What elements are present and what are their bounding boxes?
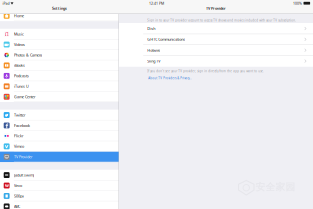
staticText: Podcasts [14, 73, 29, 78]
staticText: About TV Providers & Privacy... [148, 76, 192, 80]
staticText: iTunes U [14, 84, 29, 89]
staticText: TV Provider [206, 6, 226, 11]
staticText: Videos [14, 42, 25, 47]
staticText: Photos & Camera [14, 52, 42, 57]
staticText: iPad [2, 1, 9, 6]
button[interactable]: GHTC Communications [119, 34, 313, 45]
button[interactable]: Home [0, 11, 119, 21]
button[interactable]: About TV Providers & Privacy... [148, 76, 304, 80]
button[interactable]: 500px [0, 191, 119, 201]
button[interactable]: Hotwire [119, 45, 313, 56]
button[interactable]: Photos & Camera [0, 50, 119, 60]
button[interactable]: iTunes U [0, 81, 119, 91]
button[interactable]: Twitter [0, 110, 119, 120]
button[interactable]: Game Center [0, 92, 119, 102]
staticText: Music [14, 31, 24, 37]
button[interactable]: iBooks [0, 60, 119, 71]
staticText: Settings [52, 6, 67, 11]
button[interactable]: ABC [0, 201, 119, 209]
button[interactable]: Podcasts [0, 71, 119, 81]
button[interactable]: TV Provider [0, 152, 119, 162]
staticText: Dish [147, 26, 155, 31]
staticText: 500px [14, 193, 24, 198]
staticText: Facebook [14, 123, 30, 128]
button[interactable]: Flickr [0, 131, 119, 141]
staticText: iBooks [14, 63, 25, 68]
staticText: [adult swim] [14, 172, 34, 178]
staticText: Vevo [14, 183, 22, 188]
staticText: 12:41 PM [149, 1, 164, 6]
button[interactable]: Videos [0, 39, 119, 50]
button[interactable]: Sling TV [119, 56, 313, 66]
button[interactable]: Vevo [0, 180, 119, 191]
staticText: TV Provider [14, 154, 33, 159]
staticText: 100% [293, 1, 302, 6]
staticText: Game Center [14, 94, 36, 99]
staticText: If you don't see your TV provider, sign … [147, 69, 264, 73]
button[interactable]: Dish [119, 23, 313, 34]
staticText: GHTC Communications [147, 37, 185, 42]
staticText: Sign in to your TV provider account to a… [147, 18, 296, 22]
staticText: Twitter [14, 112, 26, 118]
button[interactable]: Music [0, 29, 119, 39]
staticText: Flickr [14, 133, 24, 138]
staticText: Vimeo [14, 144, 24, 149]
button[interactable]: Vimeo [0, 141, 119, 152]
staticText: Sling TV [147, 58, 160, 64]
staticText: ABC [14, 204, 20, 209]
staticText: Home [14, 13, 24, 18]
button[interactable]: Facebook [0, 120, 119, 131]
staticText: Hotwire [147, 48, 160, 53]
button[interactable]: [adult swim] [0, 170, 119, 180]
